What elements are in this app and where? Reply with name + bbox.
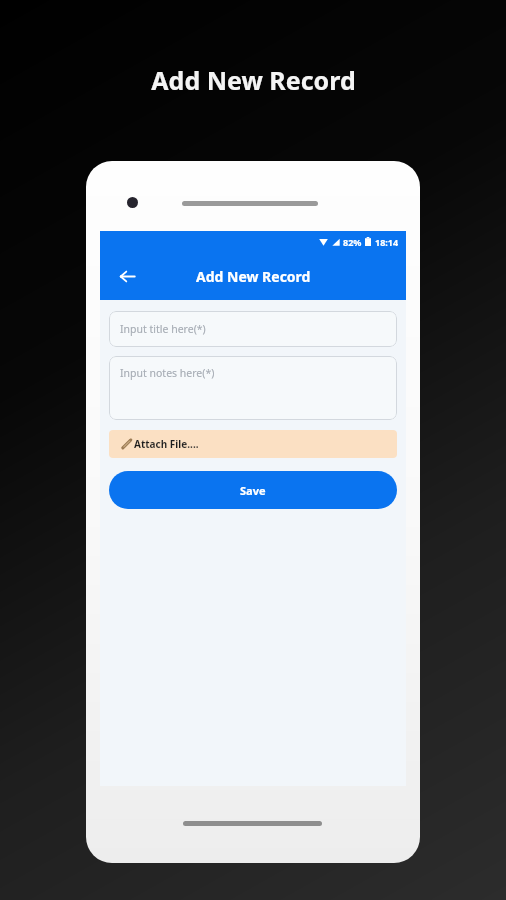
button[interactable]: Attach File....	[109, 430, 397, 458]
staticText: Input notes here(*)	[120, 366, 215, 380]
button[interactable]: Input notes here(*)	[109, 356, 397, 420]
button[interactable]: Back	[110, 259, 144, 293]
staticText: 18:14	[375, 236, 399, 248]
staticText: 82%	[343, 236, 362, 248]
staticText: Input title here(*)	[120, 322, 206, 336]
button[interactable]: Save	[109, 471, 397, 509]
button[interactable]: Input title here(*)	[109, 311, 397, 347]
staticText: Add New Record	[151, 63, 356, 97]
staticText: Add New Record	[196, 267, 311, 286]
staticText: Save	[240, 483, 266, 498]
staticText: Attach File....	[134, 437, 199, 451]
